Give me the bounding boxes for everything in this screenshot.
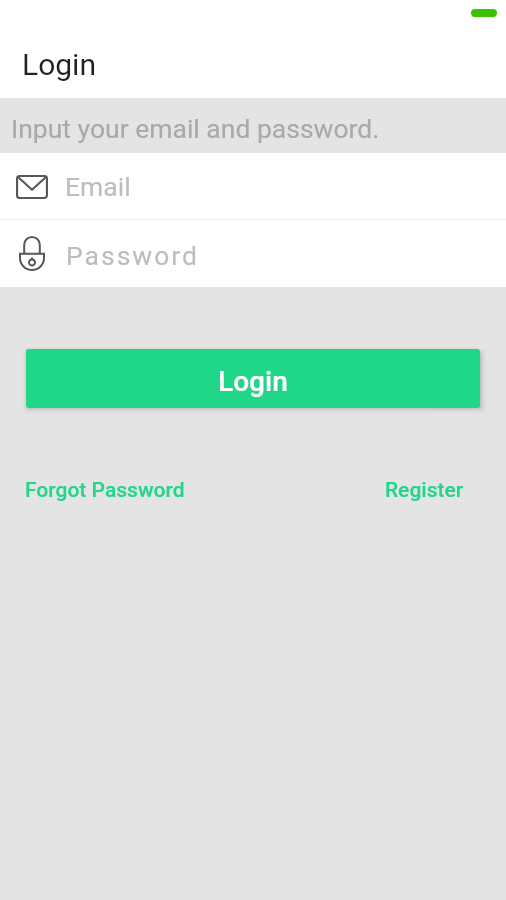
staticText: Input your email and password. [11,113,380,144]
staticText: Email [65,171,131,202]
button[interactable]: Email [0,153,506,220]
other: Email [16,175,48,199]
staticText: Password [66,240,200,271]
button[interactable]: Login [26,349,480,408]
staticText: Login [22,47,96,82]
other: Password [19,236,45,271]
staticText: Forgot Password [25,478,185,503]
staticText: Login [218,365,288,398]
button[interactable]: Password [0,220,506,287]
button[interactable]: Forgot Password [25,468,185,513]
staticText: Register [385,478,464,503]
button[interactable]: Register [385,468,464,513]
